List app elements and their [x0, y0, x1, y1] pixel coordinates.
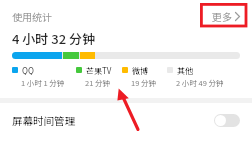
button[interactable]: 屏幕时间管理 [0, 103, 252, 138]
staticText: 1 小时 1 分钟 [21, 77, 65, 88]
staticText: 微博 [132, 65, 148, 75]
staticText: 屏幕时间管理 [12, 113, 75, 128]
staticText: 使用统计 [12, 9, 52, 23]
button[interactable]: Toggle screen time management [214, 114, 240, 127]
staticText: 2 小时 49 分钟 [176, 77, 224, 88]
staticText: QQ [22, 65, 34, 75]
staticText: 19 分钟 [131, 77, 157, 88]
staticText: 其他 [177, 65, 193, 75]
staticText: 芒果TV [86, 65, 112, 75]
button[interactable]: 更多 [202, 8, 252, 24]
staticText: 21 分钟 [85, 77, 111, 88]
staticText: 更多 [212, 9, 232, 23]
staticText: 4 小时 32 分钟 [12, 29, 96, 48]
